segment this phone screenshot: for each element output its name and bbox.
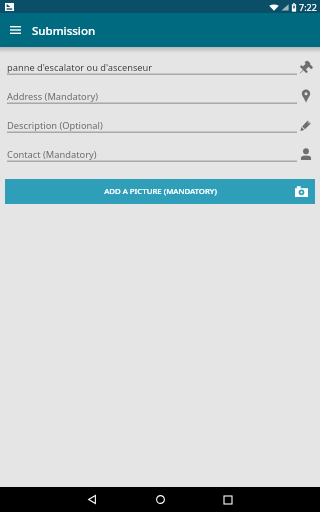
staticText: Address (Mandatory): [7, 90, 99, 103]
button[interactable]: Description (Optional): [0, 112, 320, 138]
staticText: 7:22: [299, 1, 317, 13]
button[interactable]: panne d'escalator ou d'ascenseur: [0, 54, 320, 80]
staticText: panne d'escalator ou d'ascenseur: [7, 61, 153, 74]
button[interactable]: Contact (Mandatory): [0, 141, 320, 167]
staticText: Contact (Mandatory): [7, 148, 97, 161]
button[interactable]: Home: [130, 487, 190, 512]
staticText: Description (Optional): [7, 119, 103, 132]
button[interactable]: Address (Mandatory): [0, 83, 320, 109]
button[interactable]: Recent apps: [198, 487, 258, 512]
button[interactable]: Back: [62, 487, 122, 512]
button[interactable]: ADD A PICTURE (MANDATORY): [5, 179, 315, 204]
button[interactable]: Open navigation menu: [0, 15, 30, 45]
staticText: Submission: [32, 23, 96, 39]
staticText: ADD A PICTURE (MANDATORY): [104, 186, 217, 197]
